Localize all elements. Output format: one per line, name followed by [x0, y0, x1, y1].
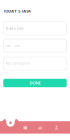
staticText: TODAY'S TASK: [3, 8, 31, 14]
button[interactable]: Profile: [49, 122, 64, 134]
button[interactable]: DONE: [3, 79, 67, 87]
button[interactable]: Add a description: [3, 57, 67, 70]
button[interactable]: TODAY'S TASK: [3, 8, 33, 13]
staticText: Time: [14, 44, 20, 47]
button[interactable]: Home: [6, 118, 15, 127]
button[interactable]: Date: [3, 39, 67, 52]
staticText: Add a description: [5, 62, 30, 65]
button[interactable]: Add a Title: [3, 22, 67, 35]
staticText: Date: [5, 44, 11, 47]
staticText: Add a Title: [5, 26, 23, 31]
button[interactable]: Calendar: [18, 122, 33, 134]
button[interactable]: Stats: [33, 122, 48, 134]
staticText: DONE: [29, 80, 40, 86]
